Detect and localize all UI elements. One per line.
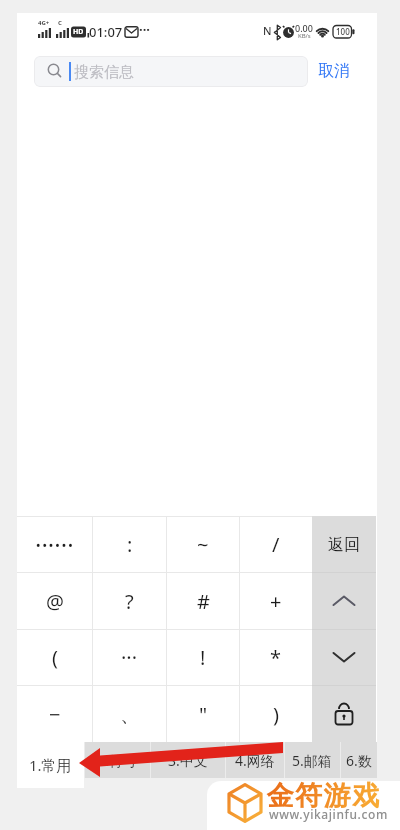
staticText: HD: [73, 27, 84, 37]
staticText: *: [270, 644, 282, 671]
staticText: #: [197, 588, 210, 615]
staticText: 1.常用: [29, 755, 72, 775]
staticText: 搜索信息: [74, 63, 134, 82]
staticText: 4G+: [38, 19, 50, 27]
staticText: ": [199, 701, 208, 728]
staticText: ···: [121, 644, 138, 671]
button[interactable]: ···: [93, 630, 166, 685]
staticText: 100: [336, 26, 350, 37]
button[interactable]: (: [17, 630, 92, 685]
button[interactable]: :: [93, 517, 166, 572]
button[interactable]: 取消: [314, 58, 354, 84]
button[interactable]: ······: [17, 517, 92, 572]
button[interactable]: +: [240, 573, 312, 629]
staticText: /: [272, 531, 280, 558]
staticText: 、: [120, 702, 140, 727]
staticText: :: [127, 531, 133, 558]
staticText: www.yikajinfu.com: [269, 806, 388, 822]
button[interactable]: /: [240, 517, 312, 572]
staticText: ~: [197, 531, 209, 558]
staticText: +: [270, 588, 282, 615]
button[interactable]: !: [167, 630, 239, 685]
staticText: 4.网络: [235, 751, 275, 770]
button[interactable]: ": [167, 686, 239, 742]
button[interactable]: #: [167, 573, 239, 629]
staticText: ?: [125, 588, 134, 615]
staticText: 6.数: [346, 751, 372, 770]
staticText: 取消: [318, 61, 350, 81]
staticText: KB/s: [298, 32, 311, 40]
staticText: 5.邮箱: [292, 751, 332, 770]
staticText: 01:07: [89, 23, 123, 41]
staticText: 3.中文: [168, 751, 208, 770]
staticText: (: [52, 644, 58, 671]
button[interactable]: 5.邮箱: [284, 742, 340, 778]
button[interactable]: ~: [167, 517, 239, 572]
staticText: ···: [139, 20, 150, 38]
button[interactable]: [312, 630, 376, 685]
staticText: @: [46, 588, 64, 615]
staticText: 金符游戏: [266, 779, 380, 813]
button[interactable]: 返回: [312, 517, 376, 572]
button[interactable]: 、: [93, 686, 166, 742]
staticText: −: [49, 701, 61, 728]
button[interactable]: ?: [93, 573, 166, 629]
button[interactable]: ): [240, 686, 312, 742]
staticText: !: [200, 644, 206, 671]
button[interactable]: 1.常用: [17, 742, 84, 788]
button[interactable]: −: [17, 686, 92, 742]
staticText: C: [58, 19, 62, 27]
button[interactable]: 6.数: [340, 742, 377, 778]
staticText: 2.符号: [97, 751, 137, 770]
staticText: 返回: [328, 535, 360, 555]
button[interactable]: [34, 56, 308, 87]
staticText: ······: [35, 528, 74, 561]
button[interactable]: [312, 573, 376, 629]
button[interactable]: 2.符号: [84, 742, 150, 778]
button[interactable]: 3.中文: [150, 742, 225, 778]
staticText: ): [273, 701, 279, 728]
button[interactable]: 4.网络: [225, 742, 284, 778]
button[interactable]: *: [240, 630, 312, 685]
button[interactable]: @: [17, 573, 92, 629]
button[interactable]: [207, 781, 400, 830]
staticText: 0.00: [295, 22, 313, 34]
staticText: N: [263, 23, 272, 38]
button[interactable]: [312, 686, 376, 742]
